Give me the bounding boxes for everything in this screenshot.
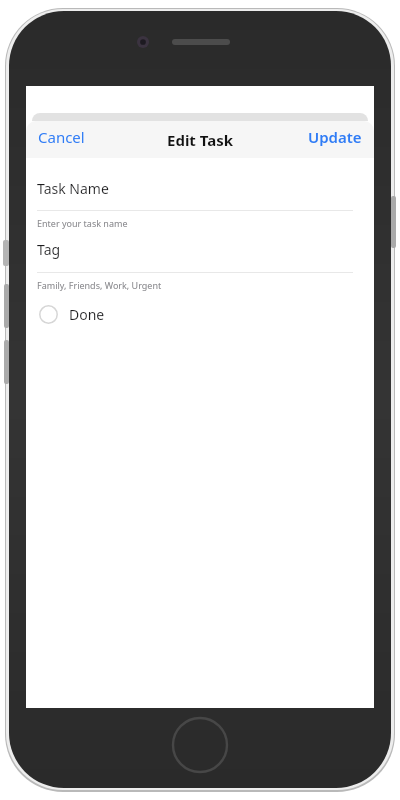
staticText: Enter your task name (37, 217, 128, 229)
staticText: Tag (37, 240, 61, 259)
button[interactable]: Update (304, 121, 366, 153)
button[interactable]: Cancel (34, 121, 89, 153)
staticText: Edit Task (167, 130, 234, 150)
staticText: Family, Friends, Work, Urgent (37, 279, 162, 291)
other: Toggle done (39, 305, 58, 324)
staticText: Done (69, 305, 105, 324)
staticText: Task Name (37, 179, 109, 198)
staticText: Cancel (38, 127, 85, 147)
staticText: Update (308, 127, 362, 147)
button[interactable]: Toggle done (37, 302, 107, 327)
